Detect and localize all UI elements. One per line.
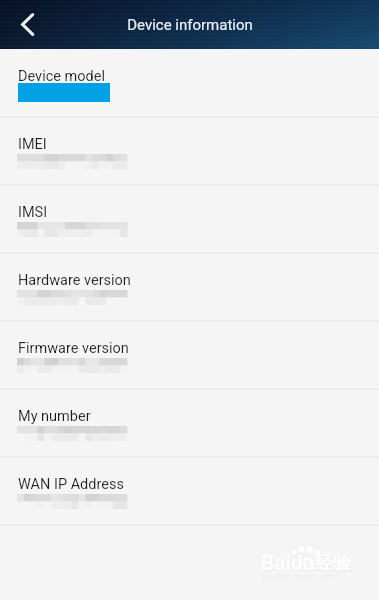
button[interactable]: IMSI — [0, 185, 379, 253]
button[interactable]: IMEI — [0, 117, 379, 185]
staticText: Baidu — [261, 551, 315, 576]
button[interactable]: Firmware version — [0, 321, 379, 389]
button[interactable]: Back — [0, 0, 47, 49]
staticText: 经验 — [315, 552, 351, 575]
button[interactable]: WAN IP Address — [0, 457, 379, 525]
staticText: Firmware version — [18, 340, 129, 357]
staticText: Hardware version — [18, 272, 131, 289]
staticText: WAN IP Address — [18, 476, 124, 493]
staticText: 经验 — [316, 553, 352, 576]
staticText: Baidu — [262, 552, 316, 577]
button[interactable]: Hardware version — [0, 253, 379, 321]
button[interactable]: Device model — [0, 49, 379, 117]
button[interactable]: My number — [0, 389, 379, 457]
staticText: IMSI — [18, 204, 48, 221]
staticText: IMEI — [18, 136, 47, 153]
staticText: My number — [18, 408, 91, 425]
staticText: Device information — [127, 16, 253, 34]
staticText: Device model — [18, 68, 105, 85]
